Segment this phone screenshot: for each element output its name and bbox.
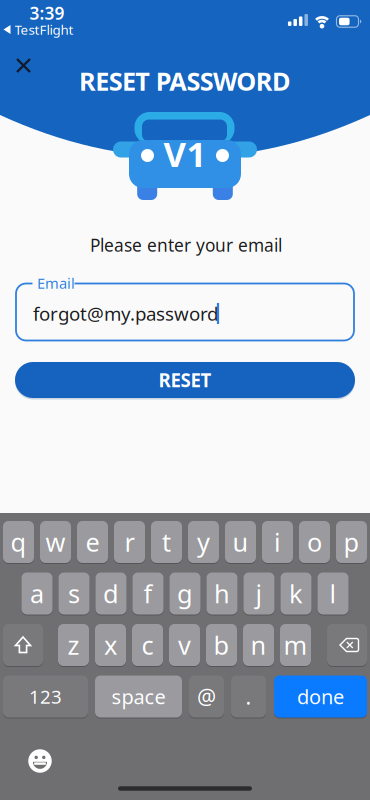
staticText: r [124, 525, 134, 559]
button[interactable]: i [262, 521, 293, 564]
staticText: V1 [163, 130, 206, 176]
staticText: y [197, 525, 210, 559]
button[interactable]: Delete [327, 624, 367, 666]
staticText: TestFlight [14, 21, 73, 38]
staticText: j [255, 577, 262, 610]
staticText: forgot@my.password [33, 301, 218, 326]
staticText: w [45, 525, 65, 559]
staticText: q [10, 525, 26, 559]
staticText: g [177, 577, 193, 610]
button[interactable]: f [132, 572, 163, 615]
button[interactable]: u [225, 521, 256, 564]
staticText: u [232, 525, 248, 559]
staticText: l [329, 577, 336, 610]
staticText: t [162, 525, 171, 559]
staticText: Please enter your email [90, 233, 282, 256]
staticText: @ [197, 682, 216, 711]
staticText: h [214, 577, 230, 610]
button[interactable]: @ [189, 675, 224, 718]
staticText: . [245, 682, 251, 711]
button[interactable]: Email [0, 0, 370, 800]
button[interactable]: b [206, 624, 237, 667]
staticText: d [103, 577, 119, 610]
staticText: n [250, 628, 266, 662]
staticText: 3:39 [29, 1, 64, 24]
button[interactable]: l [317, 572, 348, 615]
staticText: m [283, 628, 307, 662]
staticText: space [111, 683, 165, 710]
button[interactable]: d [95, 572, 126, 615]
staticText: p [343, 525, 359, 559]
staticText: RESET [158, 368, 211, 392]
button[interactable]: y [188, 521, 219, 564]
button[interactable]: k [280, 572, 311, 615]
staticText: z [67, 628, 79, 662]
staticText: f [143, 577, 152, 610]
button[interactable]: g [169, 572, 200, 615]
staticText: 123 [29, 684, 62, 709]
staticText: c [141, 628, 153, 662]
button[interactable]: done [274, 675, 367, 718]
button[interactable]: e [77, 521, 108, 564]
button[interactable]: t [151, 521, 182, 564]
button[interactable]: x [95, 624, 126, 667]
staticText: v [178, 628, 191, 662]
staticText: x [104, 628, 117, 662]
button[interactable]: 123 [3, 675, 88, 718]
button[interactable]: v [169, 624, 200, 667]
button[interactable]: z [58, 624, 89, 667]
button[interactable]: c [132, 624, 163, 667]
staticText: o [307, 525, 322, 559]
button[interactable]: Back to TestFlight [3, 21, 73, 38]
button[interactable]: q [3, 521, 34, 564]
button[interactable]: p [336, 521, 367, 564]
button[interactable]: . [231, 675, 266, 718]
staticText: a [30, 577, 44, 610]
button[interactable]: o [299, 521, 330, 564]
staticText: s [68, 577, 80, 610]
button[interactable]: s [58, 572, 89, 615]
staticText: i [274, 525, 281, 559]
staticText: done [297, 683, 344, 710]
button[interactable]: Emoji [28, 749, 52, 773]
button[interactable]: n [243, 624, 274, 667]
button[interactable]: a [21, 572, 52, 615]
button[interactable]: space [95, 675, 182, 718]
button[interactable]: r [114, 521, 145, 564]
button[interactable]: Close [15, 57, 32, 74]
button[interactable]: m [280, 624, 311, 667]
staticText: k [289, 577, 303, 610]
button[interactable]: w [40, 521, 71, 564]
staticText: Email [37, 273, 75, 293]
staticText: e [85, 525, 99, 559]
button[interactable]: j [243, 572, 274, 615]
button[interactable]: Shift [3, 624, 43, 666]
button[interactable]: h [206, 572, 237, 615]
staticText: RESET PASSWORD [79, 64, 291, 98]
button[interactable]: RESET [15, 362, 355, 398]
staticText: b [213, 628, 229, 662]
